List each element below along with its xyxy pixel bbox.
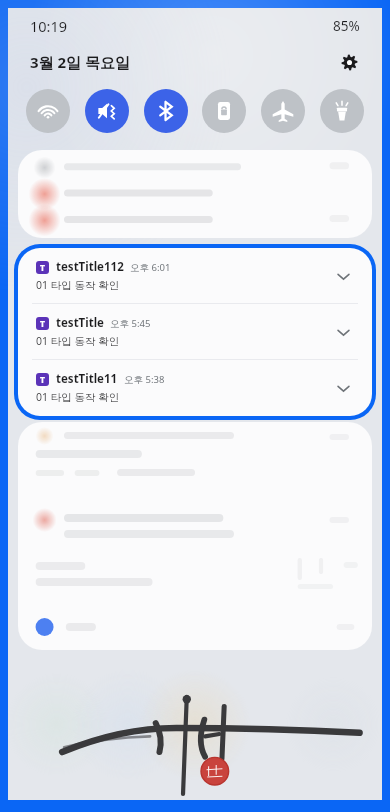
staticText: 01 타입 동작 확인 xyxy=(36,334,120,348)
staticText: 01 타입 동작 확인 xyxy=(36,390,120,404)
button[interactable]: Flashlight xyxy=(320,89,364,133)
staticText: T xyxy=(40,318,45,330)
staticText: 오후 5:38 xyxy=(124,373,165,386)
staticText: T xyxy=(40,262,45,274)
button[interactable]: Expand xyxy=(330,263,356,289)
button[interactable]: Bluetooth xyxy=(144,89,188,133)
button[interactable]: Sound off xyxy=(85,89,129,133)
button[interactable]: Expand xyxy=(330,319,356,345)
staticText: testTitle112 xyxy=(56,259,124,275)
button[interactable]: Airplane mode xyxy=(261,89,305,133)
staticText: 오후 6:01 xyxy=(130,261,171,274)
staticText: 10:19 xyxy=(30,16,68,36)
staticText: testTitle11 xyxy=(56,371,118,387)
button[interactable] xyxy=(18,150,372,238)
button[interactable]: T xyxy=(18,304,372,359)
button[interactable]: Auto rotate xyxy=(202,89,246,133)
button[interactable]: Settings xyxy=(334,47,364,77)
staticText: 오후 5:45 xyxy=(110,317,151,330)
button[interactable]: T xyxy=(18,248,372,303)
staticText: 85% xyxy=(333,17,360,35)
button[interactable] xyxy=(18,422,372,650)
button[interactable]: T xyxy=(18,360,372,415)
staticText: T xyxy=(40,374,45,386)
staticText: 01 타입 동작 확인 xyxy=(36,278,120,292)
staticText: 3월 2일 목요일 xyxy=(30,52,130,72)
staticText: testTitle xyxy=(56,315,104,331)
button[interactable]: Expand xyxy=(330,375,356,401)
button[interactable]: Wi-Fi xyxy=(26,89,70,133)
